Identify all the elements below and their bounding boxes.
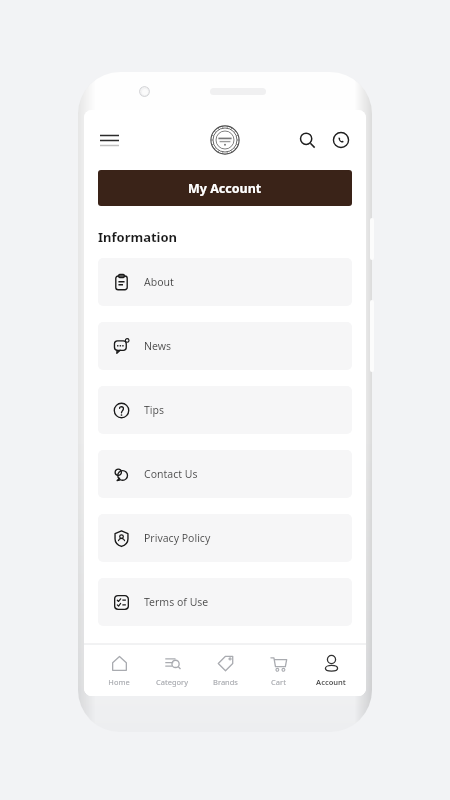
staticText: Account	[316, 677, 346, 687]
staticText: News	[144, 339, 171, 353]
button[interactable]: Account	[305, 652, 357, 689]
staticText: Information	[98, 228, 178, 246]
button[interactable]: Menu	[92, 123, 126, 157]
button[interactable]: Tips	[98, 386, 352, 434]
button[interactable]: Logo	[209, 124, 241, 156]
button[interactable]: Contact Us	[98, 450, 352, 498]
button[interactable]: Terms of Use	[98, 578, 352, 626]
staticText: About	[144, 275, 174, 289]
button[interactable]: Cart	[252, 652, 304, 689]
staticText: Category	[156, 677, 188, 687]
button[interactable]: Brands	[199, 652, 251, 689]
button[interactable]: Search	[292, 125, 322, 155]
staticText: Contact Us	[144, 467, 198, 481]
staticText: My Account	[188, 180, 262, 197]
staticText: Home	[108, 677, 130, 687]
staticText: Terms of Use	[144, 595, 209, 609]
button[interactable]: Category	[146, 652, 198, 689]
staticText: Brands	[213, 677, 238, 687]
button[interactable]: Home	[93, 652, 145, 689]
button[interactable]: Privacy Policy	[98, 514, 352, 562]
staticText: Cart	[271, 677, 286, 687]
button[interactable]: About	[98, 258, 352, 306]
staticText: Privacy Policy	[144, 531, 211, 545]
staticText: Tips	[144, 403, 165, 417]
button[interactable]: News	[98, 322, 352, 370]
button[interactable]: My Account	[98, 170, 352, 206]
button[interactable]: WhatsApp	[326, 125, 356, 155]
